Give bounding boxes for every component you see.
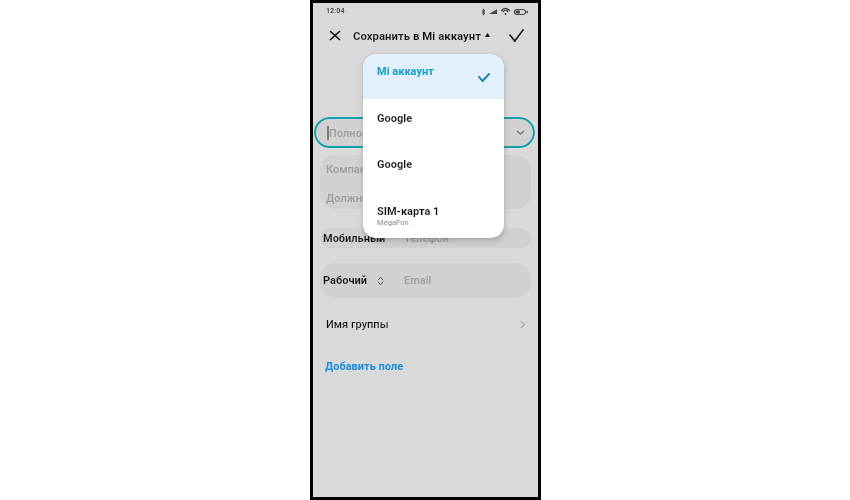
button[interactable]: Сохранить в Mi аккаунт: [353, 24, 490, 47]
staticText: Рабочий: [323, 274, 368, 287]
staticText: Сохранить в Mi аккаунт: [353, 29, 482, 42]
button[interactable]: Должность: [320, 184, 531, 209]
staticText: Email: [404, 274, 432, 287]
staticText: Google: [377, 158, 413, 171]
staticText: Компания: [326, 163, 379, 176]
staticText: Должность: [326, 192, 386, 205]
button[interactable]: Save: [505, 24, 528, 47]
button[interactable]: Компания: [320, 155, 531, 180]
button[interactable]: Мобильный: [320, 228, 531, 248]
button[interactable]: Mi аккаунт: [363, 54, 504, 99]
staticText: Имя группы: [326, 318, 389, 331]
button[interactable]: Имя группы: [313, 311, 538, 338]
button[interactable]: Полное имя: [314, 117, 535, 148]
staticText: MegaFon: [377, 218, 409, 227]
button[interactable]: Google: [363, 145, 504, 191]
button[interactable]: Рабочий: [320, 263, 531, 298]
staticText: Телефон: [404, 232, 449, 245]
staticText: Mi аккаунт: [377, 65, 434, 78]
staticText: Google: [377, 112, 413, 125]
button[interactable]: SIM-карта 1: [363, 192, 504, 238]
staticText: Добавить поле: [325, 360, 404, 373]
staticText: SIM-карта 1: [377, 205, 440, 218]
button[interactable]: Close: [323, 24, 346, 47]
staticText: 12:04: [326, 6, 345, 14]
button[interactable]: Google: [363, 99, 504, 145]
staticText: Полное имя: [329, 127, 392, 140]
staticText: Мобильный: [323, 232, 386, 245]
button[interactable]: Добавить поле: [321, 354, 408, 378]
